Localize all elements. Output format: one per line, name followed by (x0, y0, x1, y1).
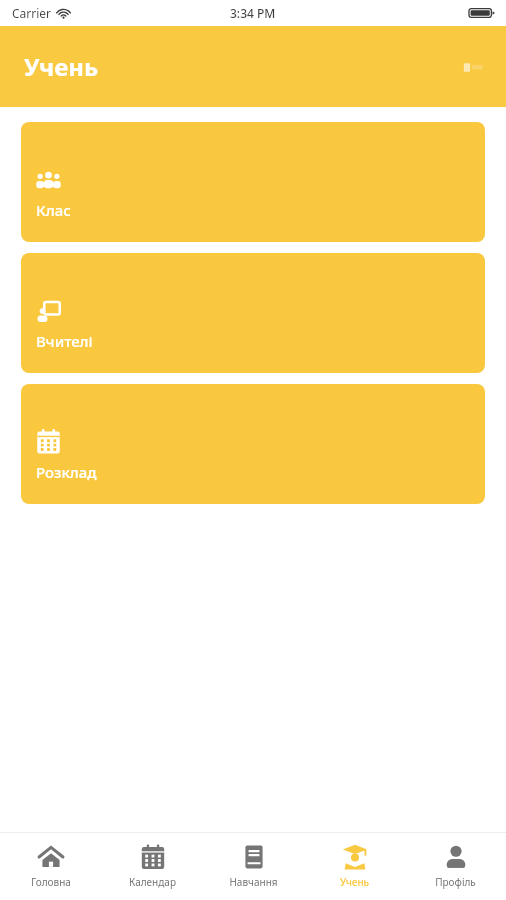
button[interactable]: Головна (0, 833, 102, 900)
button[interactable]: Log out (456, 50, 490, 84)
staticText: Головна (31, 875, 71, 889)
button[interactable]: Профіль (405, 833, 506, 900)
button[interactable]: Вчителі (21, 253, 485, 373)
button[interactable]: Навчання (203, 833, 304, 900)
button[interactable]: Клас (21, 122, 485, 242)
staticText: Клас (36, 200, 71, 220)
button[interactable]: Календар (102, 833, 203, 900)
staticText: Календар (129, 875, 176, 889)
staticText: Профіль (435, 875, 476, 889)
staticText: Розклад (36, 462, 97, 482)
staticText: Учень (340, 875, 369, 889)
staticText: 3:34 PM (230, 5, 276, 21)
button[interactable]: Розклад (21, 384, 485, 504)
staticText: Carrier (12, 5, 52, 21)
staticText: Навчання (229, 875, 278, 889)
staticText: Учень (24, 50, 99, 83)
staticText: Вчителі (36, 331, 93, 351)
button[interactable]: Учень (304, 833, 405, 900)
